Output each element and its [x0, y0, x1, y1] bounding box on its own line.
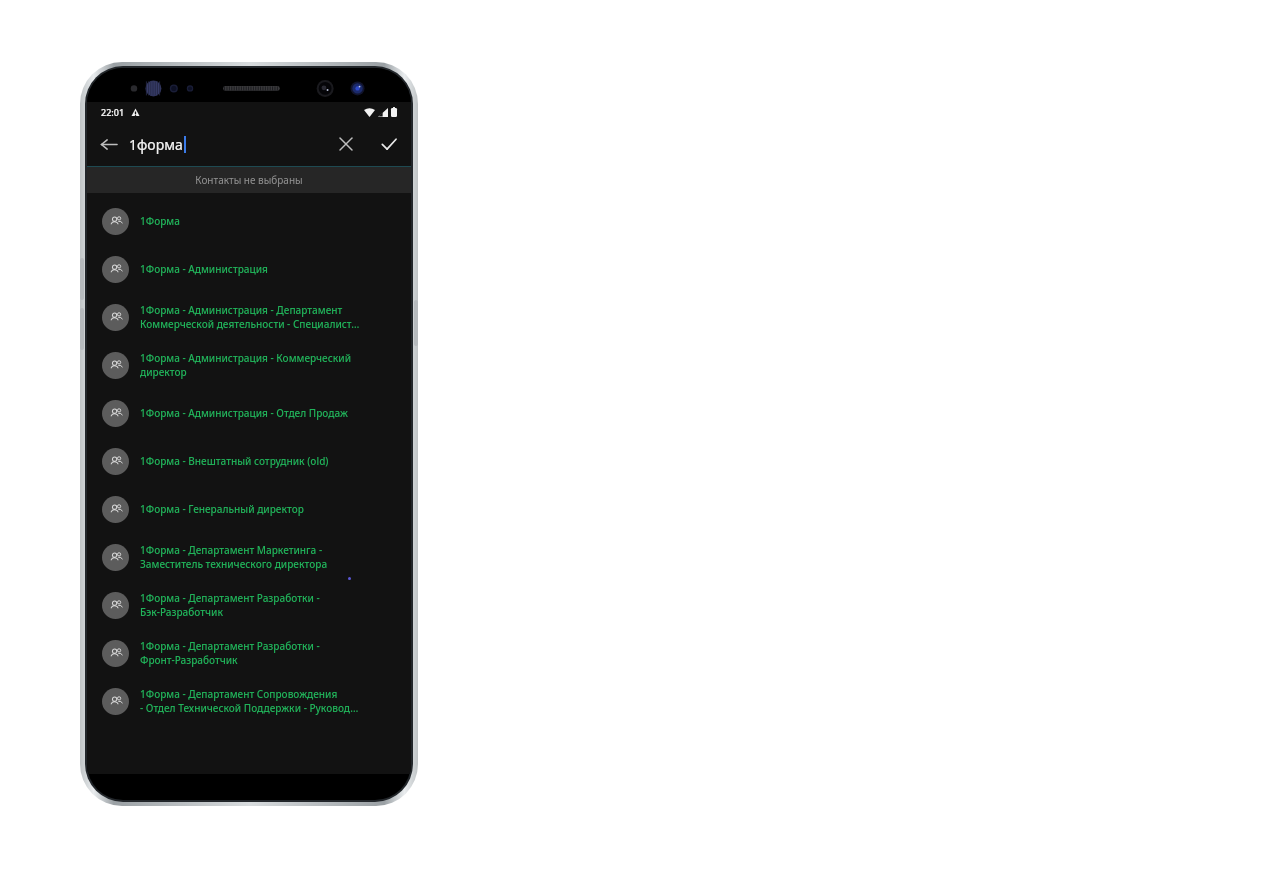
staticText: 1Форма - Администрация: [140, 262, 268, 276]
button[interactable]: 1Форма - Внештатный сотрудник (old): [87, 437, 411, 485]
staticText: Заместитель технического директора: [140, 557, 328, 571]
staticText: 1Форма - Департамент Сопровождения: [140, 687, 338, 701]
button[interactable]: 1Форма - Администрация - Коммерческий: [87, 341, 411, 389]
button[interactable]: 1Форма - Департамент Разработки -: [87, 581, 411, 629]
button[interactable]: Готово: [367, 122, 411, 166]
staticText: Фронт-Разработчик: [140, 653, 238, 667]
staticText: 1Форма - Администрация - Отдел Продаж: [140, 406, 348, 420]
button[interactable]: 1Форма - Департамент Разработки -: [87, 629, 411, 677]
button[interactable]: 1Форма - Администрация: [87, 245, 411, 293]
staticText: директор: [140, 365, 187, 379]
staticText: Коммерческой деятельности - Специалист…: [140, 317, 360, 331]
staticText: 1Форма - Департамент Маркетинга -: [140, 543, 323, 557]
staticText: 1Форма - Администрация - Департамент: [140, 303, 343, 317]
staticText: 1Форма: [140, 214, 180, 228]
button[interactable]: 1Форма - Администрация - Департамент: [87, 293, 411, 341]
staticText: Бэк-Разработчик: [140, 605, 223, 619]
button[interactable]: 1Форма - Департамент Маркетинга -: [87, 533, 411, 581]
staticText: 22:01: [101, 106, 125, 118]
button[interactable]: 1Форма: [87, 197, 411, 245]
staticText: Контакты не выбраны: [195, 173, 303, 187]
staticText: 1Форма - Внештатный сотрудник (old): [140, 454, 329, 468]
button[interactable]: 1Форма - Администрация - Отдел Продаж: [87, 389, 411, 437]
button[interactable]: Назад: [87, 122, 129, 166]
staticText: - Отдел Технической Поддержки - Руковод…: [140, 701, 359, 715]
button[interactable]: 1Форма - Департамент Сопровождения: [87, 677, 411, 725]
staticText: 1Форма - Администрация - Коммерческий: [140, 351, 352, 365]
staticText: 1Форма - Департамент Разработки -: [140, 591, 320, 605]
button[interactable]: 1Форма - Генеральный директор: [87, 485, 411, 533]
button[interactable]: Очистить: [325, 122, 367, 166]
staticText: 1Форма - Генеральный директор: [140, 502, 304, 516]
staticText: 1Форма - Департамент Разработки -: [140, 639, 320, 653]
staticText: 1форма: [129, 135, 183, 154]
